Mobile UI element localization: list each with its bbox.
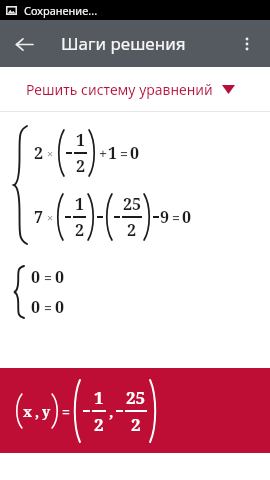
staticText: 7 (34, 206, 44, 228)
staticText: 9 (160, 206, 170, 228)
staticText: 1 (108, 142, 118, 164)
button[interactable]: Решить систему уравнений (0, 68, 270, 111)
staticText: 2 (76, 155, 86, 177)
staticText: 2 (34, 142, 44, 164)
staticText: 2 (131, 413, 141, 436)
staticText: = (120, 144, 128, 163)
staticText: × (47, 146, 54, 161)
staticText: 1 (75, 193, 85, 215)
button[interactable]: More options (227, 24, 267, 64)
staticText: 2 (127, 219, 137, 241)
staticText: y (42, 402, 51, 421)
staticText: 2 (94, 413, 104, 436)
staticText: 0 (130, 142, 140, 164)
staticText: , (109, 401, 114, 421)
staticText: Шаги решения (61, 32, 186, 55)
button[interactable]: Back (4, 24, 44, 64)
staticText: + (99, 144, 107, 163)
staticText: 0 (55, 266, 65, 288)
staticText: x (23, 402, 33, 421)
staticText: 2 (75, 219, 85, 241)
staticText: = (44, 268, 52, 287)
staticText: 0 (31, 266, 41, 288)
button[interactable]: x (0, 368, 270, 453)
staticText: 0 (31, 296, 41, 318)
staticText: = (172, 208, 180, 227)
staticText: 1 (76, 129, 86, 151)
staticText: = (62, 402, 70, 421)
staticText: 1 (94, 386, 104, 409)
staticText: = (44, 298, 52, 317)
staticText: 0 (55, 296, 65, 318)
staticText: Сохранение... (24, 3, 98, 18)
staticText: 25 (126, 386, 146, 409)
staticText: 25 (123, 193, 142, 215)
staticText: × (47, 210, 54, 225)
staticText: Решить систему уравнений (26, 80, 213, 99)
staticText: 0 (182, 206, 192, 228)
staticText: , (35, 402, 40, 421)
